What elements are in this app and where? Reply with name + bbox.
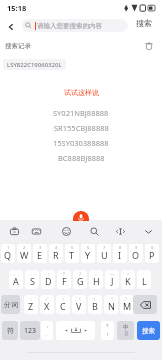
staticText: ； bbox=[61, 296, 65, 301]
button[interactable]: 0 bbox=[145, 244, 159, 263]
button[interactable]: 中 bbox=[117, 321, 134, 340]
button[interactable]: Back bbox=[3, 19, 19, 35]
staticText: C bbox=[60, 300, 66, 312]
button[interactable]: 请输入您要搜索的内容 bbox=[22, 19, 128, 32]
button[interactable]: （ bbox=[72, 295, 86, 314]
button[interactable]: 6 bbox=[81, 244, 95, 263]
staticText: A bbox=[13, 275, 19, 287]
staticText: L bbox=[142, 275, 147, 287]
button[interactable]: 123 bbox=[20, 321, 40, 340]
staticText: 3 bbox=[39, 245, 42, 250]
button[interactable]: ； bbox=[56, 295, 70, 314]
staticText: SR155CBJ88888 bbox=[54, 123, 109, 133]
button[interactable]: 4 bbox=[49, 244, 63, 263]
button[interactable]: 3 bbox=[33, 244, 47, 263]
staticText: N bbox=[108, 300, 115, 312]
staticText: ： bbox=[46, 271, 50, 276]
button[interactable]: ， bbox=[41, 321, 53, 340]
staticText: Q bbox=[4, 249, 12, 261]
button[interactable]: Hide keyboard bbox=[139, 222, 157, 240]
staticText: G bbox=[77, 275, 84, 287]
button[interactable]: — bbox=[105, 270, 119, 289]
button[interactable]: 7 bbox=[97, 244, 111, 263]
staticText: I bbox=[118, 249, 122, 261]
staticText: 9 bbox=[135, 245, 138, 250]
button[interactable]: Emoji bbox=[57, 222, 75, 240]
button[interactable]: 、 bbox=[9, 270, 23, 289]
staticText: ！ bbox=[105, 332, 110, 338]
staticText: 5 bbox=[71, 245, 74, 250]
staticText: BC888BJ8888 bbox=[58, 153, 105, 163]
button[interactable]: Clear search history bbox=[141, 38, 157, 54]
button[interactable]: … bbox=[89, 270, 103, 289]
button[interactable]: · bbox=[137, 270, 151, 289]
button[interactable]: 5 bbox=[65, 244, 79, 263]
button[interactable]: Keyboard settings bbox=[27, 222, 45, 240]
staticText: — bbox=[110, 271, 114, 276]
button[interactable]: Voice input bbox=[73, 211, 89, 221]
button[interactable]: LSY822C19060320L bbox=[3, 59, 66, 70]
staticText: K bbox=[125, 275, 131, 287]
button[interactable]: 8 bbox=[113, 244, 127, 263]
button[interactable]: 2 bbox=[17, 244, 31, 263]
button[interactable]: 9 bbox=[129, 244, 143, 263]
button[interactable]: 《 bbox=[104, 295, 118, 314]
button[interactable]: ， bbox=[24, 295, 38, 314]
staticText: 搜索记录 bbox=[5, 42, 31, 50]
button[interactable]: 分词 bbox=[1, 295, 20, 314]
button[interactable]: Clipboard bbox=[5, 222, 23, 240]
staticText: 英 bbox=[124, 331, 129, 337]
staticText: 分词 bbox=[4, 300, 18, 309]
staticText: ～ bbox=[126, 271, 130, 276]
button[interactable]: ？ bbox=[101, 321, 114, 340]
staticText: F bbox=[62, 275, 67, 287]
staticText: 试试这样说 bbox=[64, 88, 99, 97]
staticText: 。 bbox=[45, 332, 50, 338]
staticText: W bbox=[20, 249, 29, 261]
button[interactable]: ） bbox=[88, 295, 102, 314]
staticText: 7 bbox=[103, 245, 106, 250]
staticText: 》 bbox=[125, 296, 129, 301]
button[interactable]: ： bbox=[41, 270, 55, 289]
staticText: R bbox=[53, 249, 59, 261]
staticText: 1 bbox=[7, 245, 10, 250]
staticText: M bbox=[123, 300, 132, 312]
staticText: ） bbox=[93, 296, 97, 301]
button[interactable]: Backspace bbox=[133, 295, 157, 314]
staticText: … bbox=[94, 271, 98, 276]
button[interactable]: ／ bbox=[40, 295, 54, 314]
button[interactable]: ～ bbox=[121, 270, 135, 289]
staticText: ！ bbox=[78, 271, 82, 276]
staticText: 15:18 bbox=[7, 3, 27, 13]
staticText: ／ bbox=[45, 296, 49, 301]
button[interactable]: ？ bbox=[57, 270, 71, 289]
staticText: V bbox=[76, 300, 82, 312]
staticText: 搜索 bbox=[142, 327, 155, 335]
staticText: 15SY030388888 bbox=[53, 138, 109, 148]
button[interactable]: 搜索 bbox=[137, 321, 160, 340]
staticText: 0 bbox=[151, 245, 154, 250]
staticText: 8 bbox=[119, 245, 122, 250]
staticText: D bbox=[45, 275, 52, 287]
staticText: Y bbox=[85, 249, 91, 261]
button[interactable]: 。 bbox=[25, 270, 39, 289]
staticText: T bbox=[69, 249, 75, 261]
staticText: B bbox=[92, 300, 98, 312]
button[interactable]: Move cursor bbox=[111, 222, 129, 240]
button[interactable]: Search bbox=[85, 222, 103, 240]
staticText: 请输入您要搜索的内容 bbox=[37, 22, 102, 30]
staticText: Z bbox=[28, 300, 34, 312]
button[interactable]: 》 bbox=[120, 295, 134, 314]
staticText: J bbox=[111, 275, 114, 287]
button[interactable]: 1 bbox=[1, 244, 15, 263]
staticText: H bbox=[93, 275, 100, 287]
staticText: ？ bbox=[62, 271, 66, 276]
staticText: S bbox=[30, 275, 35, 287]
staticText: LSY822C19060320L bbox=[7, 61, 62, 69]
button[interactable]: ！ bbox=[73, 270, 87, 289]
staticText: SY021NBJ88888 bbox=[53, 108, 109, 118]
staticText: X bbox=[44, 300, 50, 312]
button[interactable]: 符 bbox=[2, 321, 18, 340]
button[interactable]: 搜索 bbox=[134, 16, 154, 30]
button[interactable] bbox=[56, 321, 95, 340]
